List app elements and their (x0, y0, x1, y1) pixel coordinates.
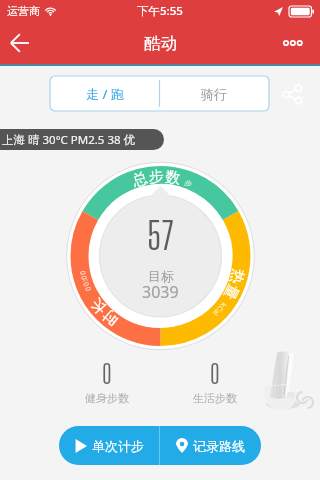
staticText: 记录路线 (193, 438, 245, 454)
staticText: 目标 (148, 268, 174, 284)
staticText: 健身步数 (85, 391, 129, 405)
button[interactable]: 骑行 (159, 76, 269, 111)
staticText: 上海 晴 30°C PM2.5 38 优 (2, 132, 136, 148)
button[interactable]: 单次计步 (59, 426, 159, 465)
button[interactable]: More options (280, 23, 320, 63)
staticText: 0 (102, 358, 112, 389)
staticText: 走 / 跑 (86, 85, 124, 103)
staticText: 生活步数 (193, 391, 237, 405)
staticText: 0 (210, 358, 220, 389)
staticText: 下午5:55 (137, 3, 183, 19)
staticText: 57 (147, 213, 174, 258)
staticText: 酷动 (144, 33, 177, 54)
button[interactable]: 走 / 跑 (50, 76, 159, 111)
staticText: 运营商 (7, 4, 40, 18)
staticText: 3039 (142, 281, 179, 303)
button[interactable]: 上海 晴 30°C PM2.5 38 优 (0, 129, 164, 150)
button[interactable]: 记录路线 (160, 426, 261, 465)
staticText: 骑行 (201, 86, 227, 102)
staticText: 单次计步 (92, 438, 144, 454)
button[interactable]: Back (0, 23, 40, 63)
button[interactable]: Share (277, 79, 307, 109)
